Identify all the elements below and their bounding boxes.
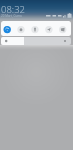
staticText: 20 Mart, Cuma bbox=[1, 14, 22, 18]
other: Status icons bbox=[45, 13, 73, 19]
button[interactable]: Brightness bbox=[1, 37, 71, 45]
staticText: 08:32 bbox=[1, 3, 26, 16]
